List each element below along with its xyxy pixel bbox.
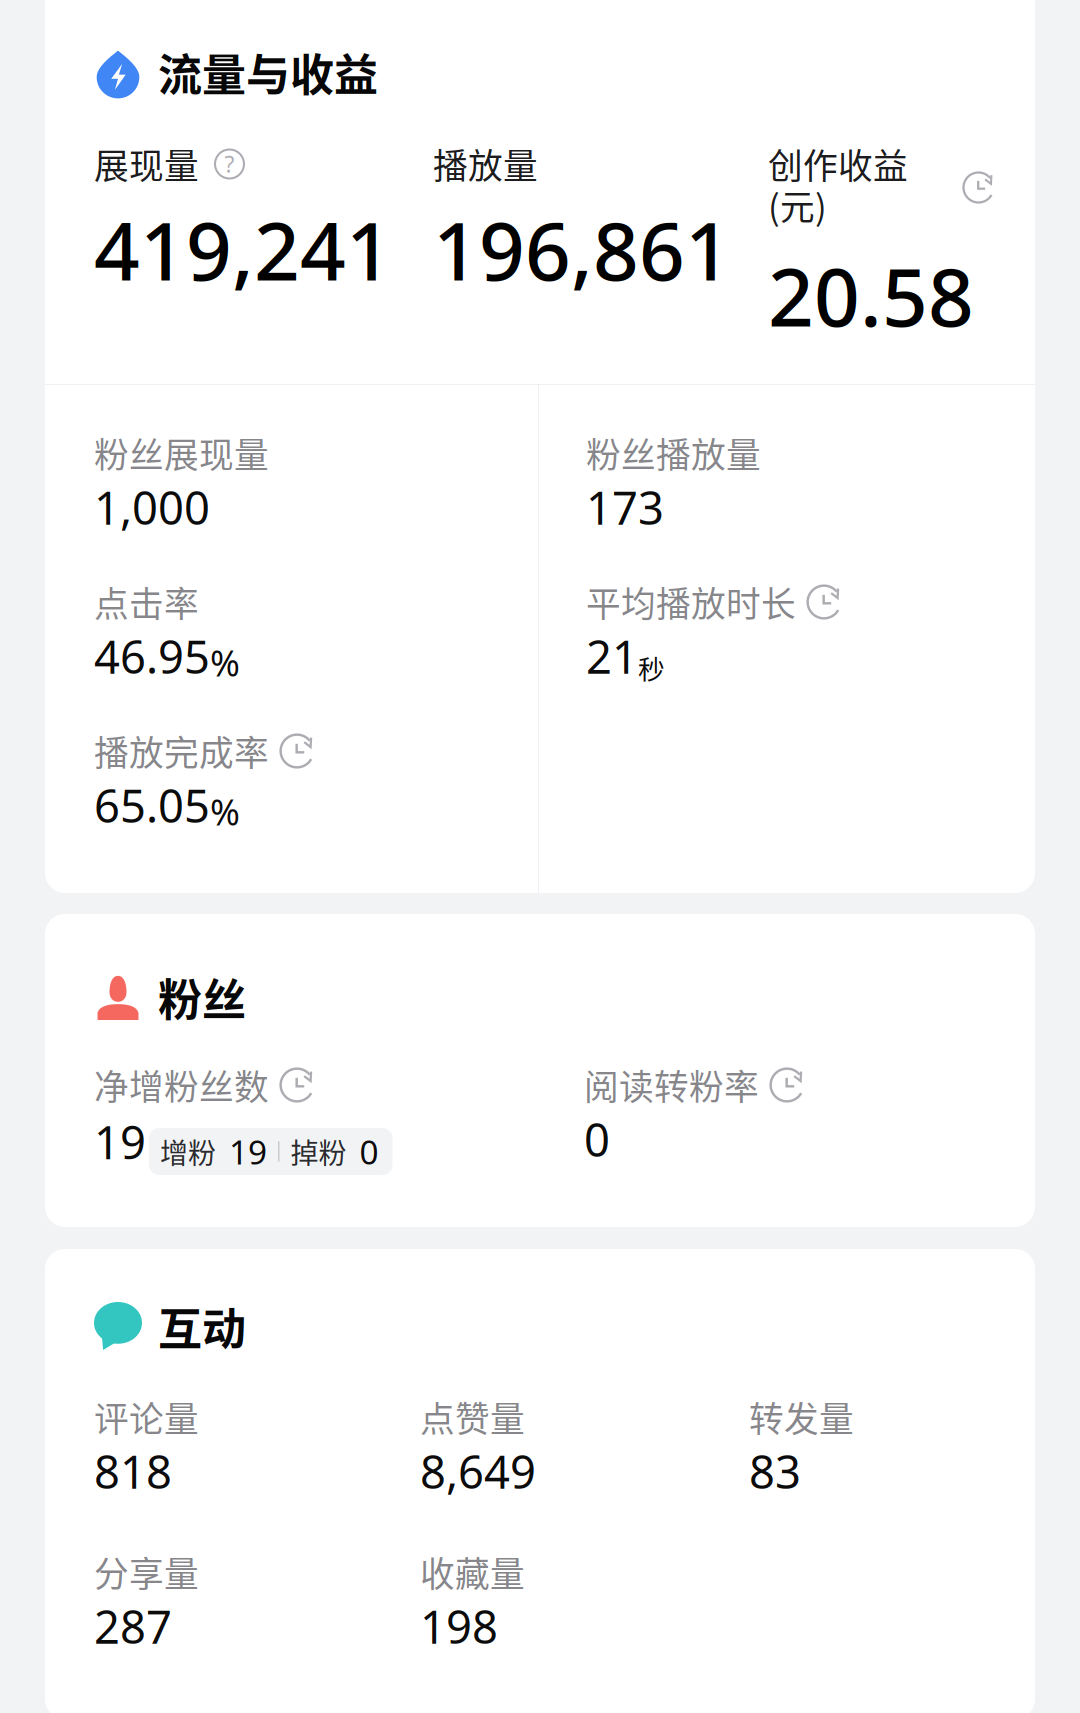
staticText: 173 bbox=[586, 476, 664, 538]
staticText: 粉丝播放量 bbox=[586, 428, 761, 478]
button[interactable]: 播放量 bbox=[433, 141, 768, 269]
staticText: 21 bbox=[586, 625, 638, 687]
staticText: 评论量 bbox=[94, 1392, 199, 1442]
staticText: 0 bbox=[584, 1108, 610, 1170]
staticText: 19 bbox=[94, 1111, 146, 1172]
staticText: 平均播放时长 bbox=[586, 577, 796, 627]
staticText: 阅读转粉率 bbox=[584, 1060, 759, 1110]
staticText: 创作收益 bbox=[768, 139, 908, 189]
staticText: 1,000 bbox=[94, 476, 210, 538]
staticText: 秒 bbox=[638, 648, 665, 687]
staticText: 83 bbox=[749, 1440, 801, 1502]
button[interactable]: 历史数据 bbox=[962, 171, 995, 204]
staticText: % bbox=[210, 787, 240, 836]
staticText: 点击率 bbox=[94, 577, 199, 627]
staticText: 65.05 bbox=[94, 774, 210, 836]
staticText: 掉粉 bbox=[290, 1131, 346, 1172]
staticText: (元) bbox=[768, 180, 827, 230]
staticText: 净增粉丝数 bbox=[94, 1060, 269, 1110]
staticText: 收藏量 bbox=[420, 1547, 525, 1597]
staticText: 粉丝 bbox=[158, 965, 246, 1029]
staticText: 互动 bbox=[158, 1294, 246, 1358]
staticText: 分享量 bbox=[94, 1547, 199, 1597]
staticText: 粉丝展现量 bbox=[94, 428, 269, 478]
button[interactable]: 展现量 bbox=[94, 141, 433, 269]
staticText: % bbox=[210, 638, 240, 687]
staticText: 818 bbox=[94, 1440, 172, 1502]
staticText: 8,649 bbox=[420, 1440, 536, 1502]
staticText: 转发量 bbox=[749, 1392, 854, 1442]
staticText: ? bbox=[224, 149, 234, 179]
staticText: 播放完成率 bbox=[94, 726, 269, 776]
staticText: 46.95 bbox=[94, 625, 210, 687]
staticText: 点赞量 bbox=[420, 1392, 525, 1442]
staticText: 0 bbox=[359, 1129, 378, 1174]
staticText: 20.58 bbox=[768, 241, 974, 350]
staticText: 流量与收益 bbox=[158, 40, 378, 104]
staticText: 19 bbox=[229, 1129, 267, 1174]
staticText: 419,241 bbox=[94, 195, 392, 304]
staticText: 198 bbox=[420, 1595, 498, 1657]
button[interactable]: 创作收益 bbox=[768, 141, 1008, 315]
staticText: 增粉 bbox=[160, 1131, 216, 1172]
staticText: 196,861 bbox=[433, 195, 731, 304]
staticText: 展现量 bbox=[94, 139, 199, 189]
staticText: 287 bbox=[94, 1595, 172, 1657]
staticText: 播放量 bbox=[433, 139, 538, 189]
